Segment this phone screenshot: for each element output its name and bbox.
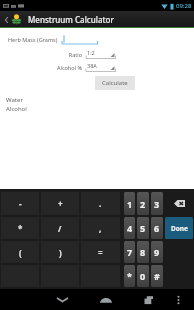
button[interactable]: ) bbox=[41, 241, 79, 263]
button[interactable]: - bbox=[1, 192, 39, 215]
button[interactable]: Navigate up bbox=[3, 12, 115, 27]
staticText: = bbox=[98, 247, 103, 258]
staticText: - bbox=[19, 198, 22, 209]
staticText: Alcohol bbox=[6, 105, 27, 113]
button[interactable]: Home bbox=[84, 289, 127, 310]
button[interactable]: Calculate bbox=[95, 76, 135, 90]
button[interactable]: # bbox=[151, 265, 163, 287]
staticText: 2 bbox=[140, 198, 146, 210]
button[interactable]: More options bbox=[170, 289, 186, 310]
staticText: Calculate bbox=[102, 79, 128, 87]
staticText: 9 bbox=[154, 246, 160, 258]
button[interactable] bbox=[62, 34, 98, 45]
button[interactable]: 4 bbox=[124, 217, 135, 239]
staticText: * bbox=[127, 270, 132, 282]
button[interactable]: = bbox=[81, 241, 120, 263]
button[interactable]: / bbox=[41, 217, 79, 239]
button[interactable]: 8 bbox=[137, 241, 149, 263]
staticText: 0 bbox=[140, 270, 146, 282]
staticText: Menstruum Calculator bbox=[28, 14, 114, 25]
button[interactable]: Delete bbox=[165, 192, 193, 215]
staticText: ) bbox=[59, 247, 62, 258]
button[interactable]: 9 bbox=[151, 241, 163, 263]
staticText: 38A bbox=[87, 62, 97, 69]
staticText: # bbox=[154, 270, 160, 282]
staticText: Herb Mass (Grams) bbox=[8, 36, 58, 43]
staticText: / bbox=[58, 223, 62, 234]
button[interactable]: 38A bbox=[86, 62, 116, 73]
staticText: Alcohol % bbox=[56, 64, 82, 71]
staticText: . bbox=[99, 198, 102, 209]
button[interactable]: 1 bbox=[124, 192, 135, 215]
staticText: Done bbox=[171, 224, 188, 233]
staticText: 6 bbox=[154, 222, 160, 234]
staticText: 09:28 bbox=[176, 2, 192, 10]
staticText: + bbox=[58, 198, 63, 209]
button[interactable]: * bbox=[124, 265, 135, 287]
button[interactable]: , bbox=[81, 217, 120, 239]
staticText: * bbox=[18, 223, 23, 234]
button[interactable]: 0 bbox=[137, 265, 149, 287]
staticText: , bbox=[99, 223, 102, 234]
staticText: 1:2 bbox=[87, 49, 95, 56]
staticText: 7 bbox=[127, 246, 133, 258]
button[interactable]: 7 bbox=[124, 241, 135, 263]
staticText: ( bbox=[19, 247, 22, 258]
staticText: 5 bbox=[140, 222, 146, 234]
button[interactable]: ( bbox=[1, 241, 39, 263]
button[interactable]: 6 bbox=[151, 217, 163, 239]
button[interactable]: 3 bbox=[151, 192, 163, 215]
staticText: 4 bbox=[127, 222, 133, 234]
staticText: Water bbox=[6, 96, 23, 104]
staticText: 1 bbox=[127, 198, 133, 210]
button[interactable]: 5 bbox=[137, 217, 149, 239]
button[interactable]: Done bbox=[165, 217, 193, 239]
button[interactable]: * bbox=[1, 217, 39, 239]
button[interactable]: . bbox=[81, 192, 120, 215]
staticText: 8 bbox=[140, 246, 146, 258]
button[interactable]: 2 bbox=[137, 192, 149, 215]
staticText: Ratio bbox=[68, 51, 82, 58]
staticText: 3 bbox=[154, 198, 160, 210]
button[interactable]: Recent apps bbox=[127, 289, 170, 310]
button[interactable]: + bbox=[41, 192, 79, 215]
button[interactable]: Back bbox=[40, 289, 84, 310]
button[interactable]: 1:2 bbox=[86, 49, 116, 60]
